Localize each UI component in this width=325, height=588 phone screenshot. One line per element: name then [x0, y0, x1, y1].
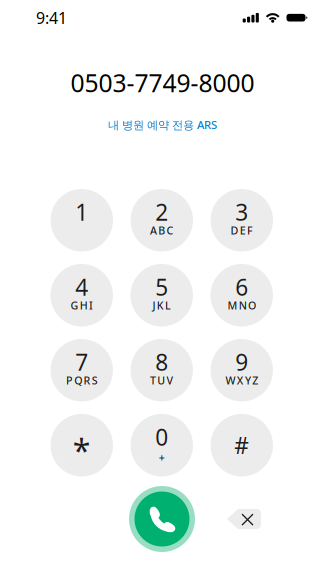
staticText: GHI [70, 298, 93, 312]
staticText: PQRS [66, 373, 98, 387]
staticText: DEF [230, 223, 253, 237]
button[interactable]: 0 [130, 414, 193, 476]
staticText: WXYZ [225, 373, 258, 387]
staticText: 내 병원 예약 전용 ARS [108, 117, 217, 132]
button[interactable]: 4 [50, 264, 113, 326]
staticText: TUV [150, 373, 173, 387]
staticText: * [73, 428, 91, 472]
staticText: # [234, 430, 249, 461]
staticText: 4 [75, 271, 88, 302]
button[interactable]: Delete [227, 509, 261, 529]
staticText: 0 [155, 421, 168, 452]
button[interactable]: 6 [210, 264, 273, 326]
button[interactable]: * [50, 414, 113, 476]
staticText: ABC [150, 223, 173, 237]
staticText: JKL [152, 298, 171, 312]
staticText: 1 [75, 196, 88, 227]
button[interactable]: 1 [50, 189, 113, 251]
button[interactable]: 9 [210, 339, 273, 401]
button[interactable]: Call [129, 486, 195, 552]
staticText: MNO [227, 298, 256, 312]
staticText: 5 [155, 271, 168, 302]
button[interactable]: 5 [130, 264, 193, 326]
staticText: 6 [235, 271, 248, 302]
staticText: 9:41 [36, 7, 67, 29]
button[interactable]: 7 [50, 339, 113, 401]
button[interactable]: 8 [130, 339, 193, 401]
staticText: 2 [155, 196, 168, 227]
staticText: + [159, 450, 165, 464]
button[interactable]: # [210, 414, 273, 476]
staticText: 0503-7749-8000 [70, 66, 254, 100]
staticText: 9 [235, 346, 248, 377]
staticText: 8 [155, 346, 168, 377]
staticText: 3 [235, 196, 248, 227]
button[interactable]: 2 [130, 189, 193, 251]
staticText: 7 [75, 346, 88, 377]
button[interactable]: 3 [210, 189, 273, 251]
